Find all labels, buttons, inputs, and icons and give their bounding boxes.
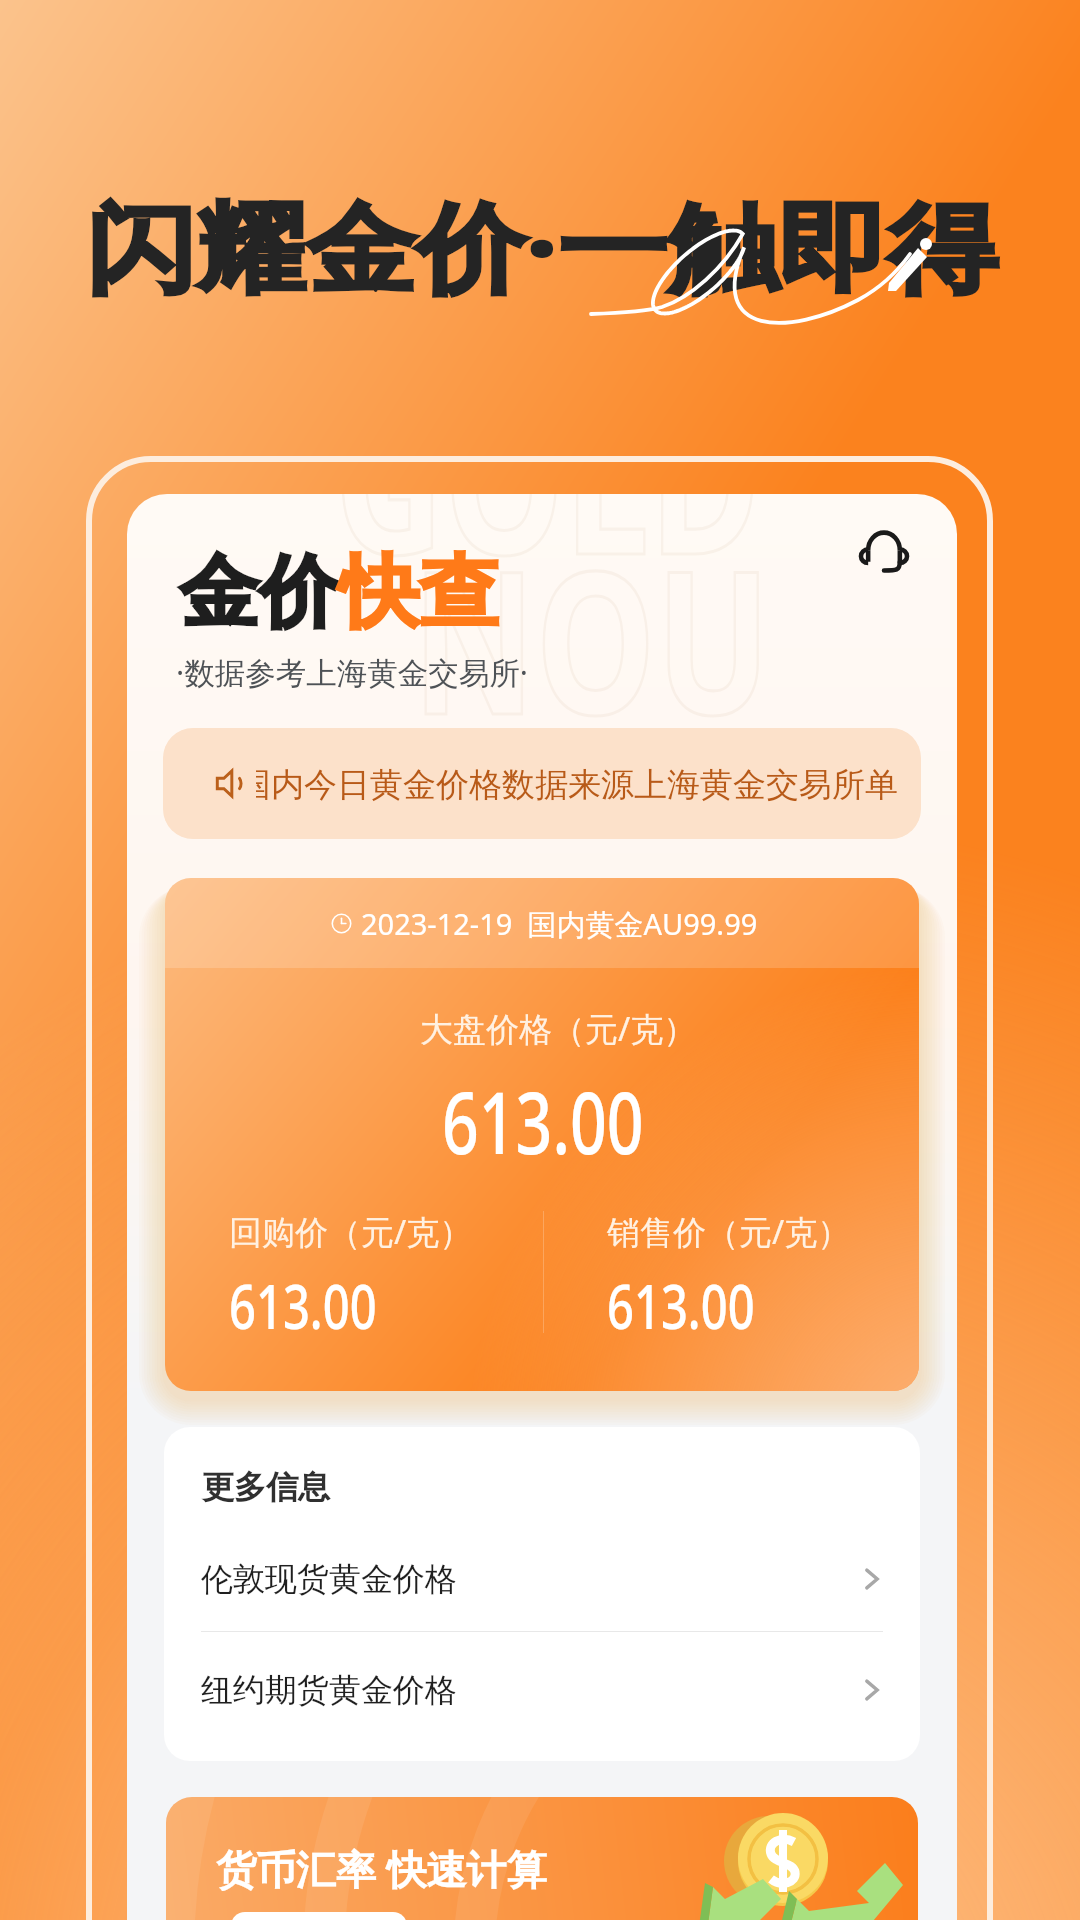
staticText: 快查 — [339, 544, 499, 643]
button[interactable]: 伦敦现货黄金价格 — [164, 1529, 920, 1628]
button[interactable]: 纽约期货黄金价格 — [164, 1640, 920, 1739]
staticText: 2023-12-19 国内黄金AU99.99 — [361, 904, 758, 944]
staticText: ·数据参考上海黄金交易所· — [176, 651, 528, 693]
button[interactable]: 货币汇率 快速计算 — [166, 1797, 918, 1920]
button[interactable]: 国内今日黄金价格数据来源上海黄金交易所单 — [163, 728, 921, 839]
staticText: 纽约期货黄金价格 — [201, 1670, 457, 1710]
button[interactable] — [231, 1912, 407, 1920]
staticText: 金价 — [179, 544, 339, 643]
staticText: 国内今日黄金价格数据来源上海黄金交易所单 — [256, 764, 898, 806]
staticText: 613.00 — [442, 1063, 644, 1179]
staticText: NOU — [412, 503, 771, 772]
staticText: 闪耀金价·一触即得 — [86, 178, 998, 311]
staticText: 货币汇率 快速计算 — [216, 1841, 547, 1896]
staticText: 大盘价格（元/克） — [420, 1006, 697, 1051]
button[interactable]: Customer service — [860, 530, 908, 574]
staticText: GOLD — [334, 494, 761, 612]
button[interactable]: 2023-12-19 国内黄金AU99.99 — [165, 878, 919, 1391]
staticText: 回购价（元/克） — [229, 1209, 473, 1254]
staticText: 更多信息 — [202, 1467, 330, 1507]
staticText: 613.00 — [607, 1263, 755, 1347]
staticText: 伦敦现货黄金价格 — [201, 1559, 457, 1599]
staticText: 613.00 — [229, 1263, 377, 1347]
staticText: 销售价（元/克） — [607, 1209, 851, 1254]
